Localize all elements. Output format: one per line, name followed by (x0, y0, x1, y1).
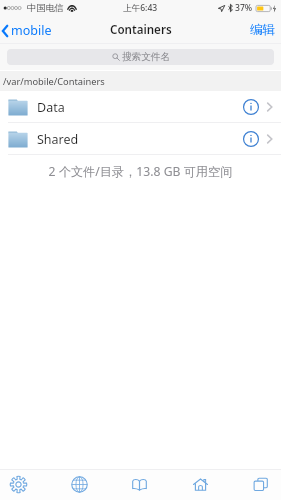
staticText: 中国电信 (27, 2, 64, 14)
staticText: 37% (235, 2, 253, 14)
staticText: /var/mobile/Containers (3, 75, 105, 88)
button[interactable]: Tabs (251, 469, 269, 500)
button[interactable]: Home (191, 469, 209, 500)
staticText: Shared (37, 131, 79, 148)
staticText: mobile (11, 22, 52, 39)
staticText: Containers (110, 22, 172, 38)
button[interactable]: mobile (0, 18, 56, 43)
button[interactable]: Settings (9, 469, 27, 500)
button[interactable]: Shared (0, 123, 281, 155)
staticText: 搜索文件名 (122, 51, 170, 63)
button[interactable]: 搜索文件名 (7, 49, 274, 65)
button[interactable]: Info (240, 128, 262, 150)
staticText: 2 个文件/目录，13.8 GB 可用空间 (0, 163, 281, 180)
button[interactable]: Info (240, 96, 262, 118)
staticText: 编辑 (250, 22, 276, 38)
button[interactable]: Bookmarks (130, 469, 148, 500)
staticText: 上午6:43 (123, 2, 158, 14)
button[interactable]: Data (0, 91, 281, 123)
staticText: Data (37, 99, 65, 116)
button[interactable]: Browser (70, 469, 88, 500)
button[interactable]: 编辑 (245, 18, 281, 42)
